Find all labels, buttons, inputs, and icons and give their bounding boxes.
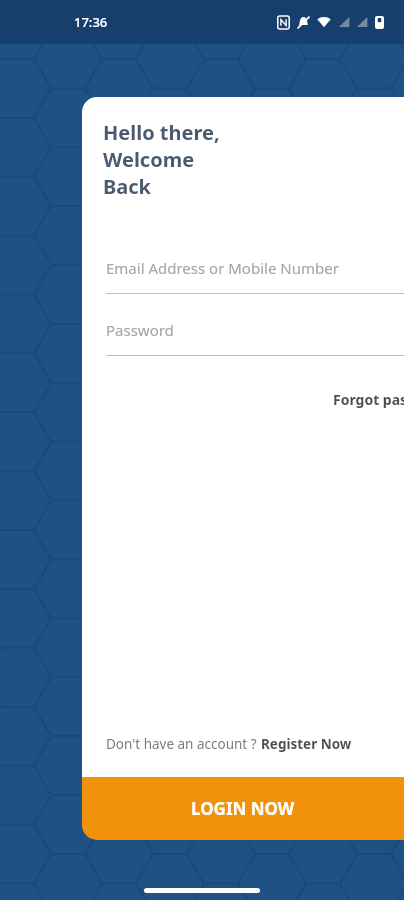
button[interactable]: Email Address or Mobile Number bbox=[106, 258, 404, 294]
staticText: Hello there, bbox=[103, 119, 220, 146]
staticText: Email Address or Mobile Number bbox=[106, 258, 339, 278]
button[interactable]: Password bbox=[106, 320, 404, 356]
staticText: Don't have an account ? bbox=[106, 735, 261, 753]
staticText: Welcome bbox=[103, 146, 195, 173]
staticText: Password bbox=[106, 320, 174, 340]
staticText: Back bbox=[103, 173, 151, 200]
staticText: 17:36 bbox=[74, 13, 108, 31]
button[interactable]: Forgot password ? bbox=[329, 386, 404, 413]
button[interactable]: Register Now bbox=[261, 735, 352, 753]
button[interactable]: LOGIN NOW bbox=[82, 777, 404, 840]
staticText: LOGIN NOW bbox=[191, 797, 295, 820]
